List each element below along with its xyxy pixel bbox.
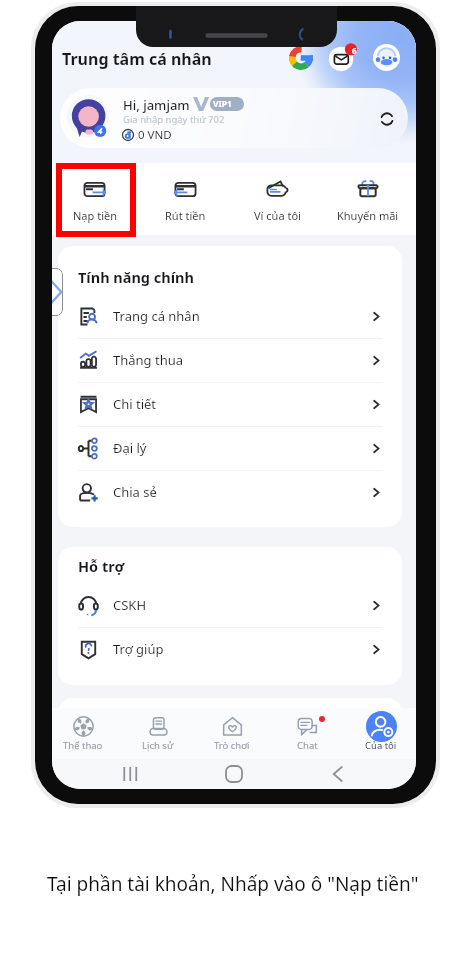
button[interactable]: Chat bbox=[271, 713, 343, 759]
button[interactable]: Hi, jamjam bbox=[60, 88, 408, 148]
button[interactable]: Thể thao bbox=[52, 713, 119, 759]
staticText: Chi tiết bbox=[113, 395, 157, 413]
staticText: Chia sẻ bbox=[113, 483, 157, 501]
button[interactable]: Customer support bbox=[373, 44, 400, 71]
button[interactable]: Ví của tôi bbox=[235, 166, 319, 232]
staticText: Rút tiền bbox=[165, 208, 206, 223]
button[interactable]: Google bbox=[289, 46, 313, 70]
staticText: Lịch sử bbox=[142, 739, 174, 752]
button[interactable]: Khuyến mãi bbox=[326, 166, 410, 232]
staticText: Ví của tôi bbox=[254, 208, 301, 223]
button[interactable]: Refresh balance bbox=[379, 111, 395, 127]
button[interactable]: Của tôi bbox=[345, 713, 416, 759]
button[interactable]: Lịch sử bbox=[122, 713, 194, 759]
staticText: Trung tâm cá nhân bbox=[62, 48, 212, 70]
staticText: Trợ giúp bbox=[113, 640, 164, 658]
button[interactable]: Rút tiền bbox=[143, 166, 227, 232]
staticText: Hi, jamjam bbox=[123, 96, 190, 114]
button[interactable]: Messages bbox=[328, 43, 357, 72]
staticText: Của tôi bbox=[365, 739, 397, 752]
button[interactable]: Chi tiết bbox=[58, 382, 402, 426]
button[interactable]: Thắng thua bbox=[58, 338, 402, 382]
staticText: Thắng thua bbox=[113, 351, 184, 369]
button[interactable]: Nạp tiền bbox=[53, 166, 137, 232]
staticText: Trò chơi bbox=[214, 739, 250, 752]
staticText: 0 VND bbox=[138, 127, 172, 143]
button[interactable] bbox=[58, 698, 402, 738]
staticText: 6 bbox=[352, 45, 357, 56]
button[interactable]: Đại lý bbox=[58, 426, 402, 470]
staticText: Trang cá nhân bbox=[113, 307, 200, 325]
staticText: Chat bbox=[297, 739, 318, 752]
staticText: CSKH bbox=[113, 596, 147, 614]
staticText: Gia nhập ngày thứ 702 bbox=[123, 113, 225, 126]
staticText: Hỗ trợ bbox=[78, 556, 125, 576]
button[interactable]: Trợ giúp bbox=[58, 627, 402, 671]
button[interactable]: Chia sẻ bbox=[58, 470, 402, 514]
staticText: Thể thao bbox=[63, 739, 103, 752]
button[interactable]: Trang cá nhân bbox=[58, 294, 402, 338]
staticText: Đại lý bbox=[113, 439, 147, 457]
staticText: VIP1 bbox=[213, 98, 232, 110]
button[interactable]: Open side menu bbox=[52, 268, 63, 316]
staticText: Nạp tiền bbox=[73, 208, 117, 223]
staticText: Khuyến mãi bbox=[337, 208, 399, 223]
staticText: Tại phần tài khoản, Nhấp vào ô "Nạp tiền… bbox=[47, 871, 419, 897]
staticText: Tính năng chính bbox=[78, 267, 194, 287]
button[interactable]: Trò chơi bbox=[196, 713, 268, 759]
button[interactable]: CSKH bbox=[58, 583, 402, 627]
